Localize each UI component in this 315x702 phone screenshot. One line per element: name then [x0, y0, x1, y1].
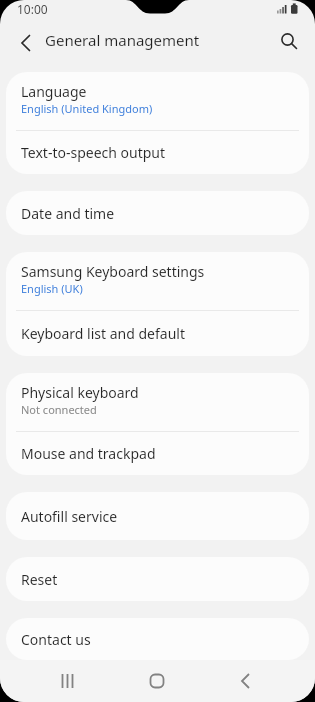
staticText: Mouse and trackpad	[21, 444, 156, 463]
button[interactable]: Mouse and trackpad	[6, 432, 309, 475]
button[interactable]: Physical keyboard	[6, 373, 309, 431]
button[interactable]	[137, 661, 177, 701]
button[interactable]: Language	[6, 72, 309, 130]
staticText: Reset	[21, 570, 58, 589]
staticText: Autofill service	[21, 507, 118, 526]
staticText: English (United Kingdom)	[21, 101, 153, 116]
staticText: Not connected	[21, 402, 97, 417]
button[interactable]: Date and time	[6, 191, 309, 235]
button[interactable]: Text-to-speech output	[6, 131, 309, 174]
button[interactable]: Autofill service	[6, 492, 309, 540]
button[interactable]	[14, 31, 38, 55]
staticText: Keyboard list and default	[21, 324, 185, 343]
button[interactable]	[48, 661, 88, 701]
button[interactable]: Samsung Keyboard settings	[6, 252, 309, 310]
button[interactable]: Reset	[6, 557, 309, 601]
staticText: Date and time	[21, 204, 115, 223]
staticText: Contact us	[21, 630, 91, 649]
staticText: Samsung Keyboard settings	[21, 262, 205, 281]
staticText: Physical keyboard	[21, 383, 139, 402]
button[interactable]: Contact us	[6, 618, 309, 660]
staticText: English (UK)	[21, 281, 83, 296]
staticText: Language	[21, 82, 87, 101]
staticText: 10:00	[17, 1, 48, 17]
button[interactable]: Keyboard list and default	[6, 311, 309, 356]
staticText: General management	[45, 30, 200, 50]
staticText: Text-to-speech output	[21, 143, 166, 162]
button[interactable]	[277, 30, 301, 54]
button[interactable]	[226, 661, 266, 701]
